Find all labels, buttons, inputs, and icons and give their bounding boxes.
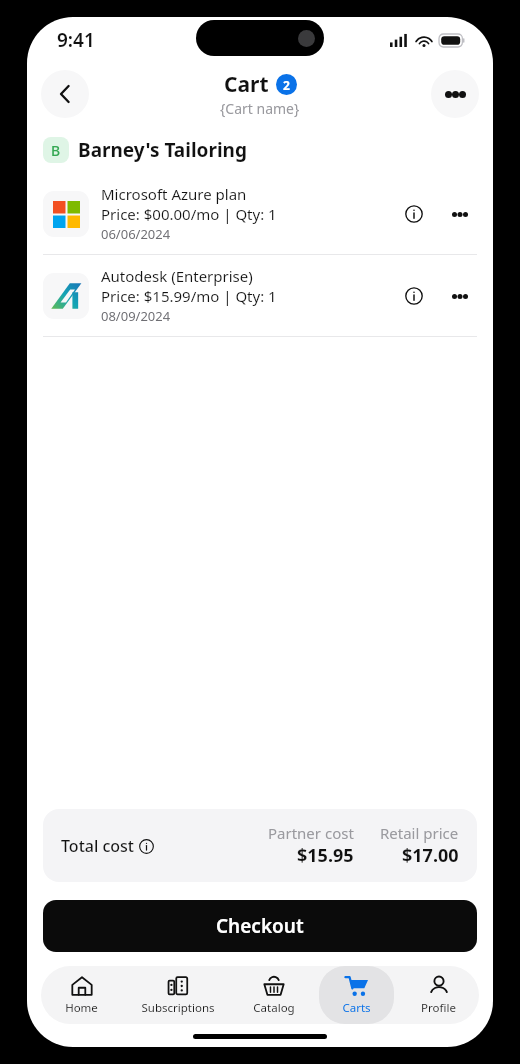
button[interactable]: Item info (397, 197, 431, 231)
button[interactable]: Item info (397, 279, 431, 313)
staticText: $17.00 (402, 843, 459, 868)
button[interactable]: Profile (397, 966, 479, 1024)
staticText: B (51, 141, 61, 160)
button[interactable]: Subscriptions (122, 966, 233, 1024)
button[interactable]: B (43, 137, 477, 163)
button[interactable]: Autodesk (Enterprise) (27, 255, 493, 336)
button[interactable]: Microsoft Azure plan (27, 173, 493, 254)
staticText: Subscriptions (141, 1000, 215, 1016)
staticText: Retail price (380, 823, 459, 843)
staticText: 08/09/2024 (101, 307, 171, 325)
button[interactable]: Catalog (233, 966, 315, 1024)
staticText: Carts (342, 1000, 371, 1016)
staticText: 2 (283, 77, 290, 93)
staticText: Autodesk (Enterprise) (101, 266, 253, 286)
staticText: Catalog (253, 1000, 295, 1016)
button[interactable]: Back (41, 70, 89, 118)
staticText: Microsoft Azure plan (101, 184, 247, 204)
button[interactable]: Home (41, 966, 122, 1024)
staticText: Barney's Tailoring (78, 137, 247, 163)
button[interactable]: Carts (319, 966, 394, 1024)
staticText: Cart (224, 70, 269, 99)
button[interactable]: Item options (443, 279, 477, 313)
staticText: 9:41 (57, 27, 95, 53)
staticText: 06/06/2024 (101, 225, 171, 243)
staticText: $15.95 (297, 843, 354, 868)
staticText: Home (65, 1000, 98, 1016)
staticText: Price: $15.99/mo | Qty: 1 (101, 286, 277, 306)
button[interactable]: Item options (443, 197, 477, 231)
staticText: Total cost (61, 835, 134, 857)
staticText: Partner cost (268, 823, 354, 843)
staticText: Price: $00.00/mo | Qty: 1 (101, 204, 277, 224)
button[interactable]: Total cost (43, 809, 477, 882)
staticText: Profile (421, 1000, 456, 1016)
button[interactable]: Checkout (43, 900, 477, 952)
staticText: Checkout (216, 913, 304, 939)
staticText: {Cart name} (220, 99, 300, 118)
button[interactable]: More options (431, 70, 479, 118)
